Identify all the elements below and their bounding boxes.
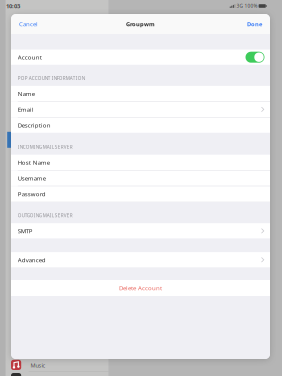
button[interactable]: SMTP — [11, 223, 270, 239]
button[interactable]: Host Name — [11, 155, 270, 170]
staticText: POP ACCOUNT INFORMATION — [18, 75, 85, 81]
button[interactable]: Email — [11, 102, 270, 117]
button[interactable]: Username — [11, 170, 270, 186]
staticText: 10:03 — [6, 2, 20, 10]
staticText: 3G — [237, 3, 243, 9]
staticText: Cancel — [19, 20, 38, 28]
staticText: Description — [18, 121, 51, 129]
staticText: Delete Account — [119, 284, 162, 292]
staticText: Done — [247, 20, 262, 28]
button[interactable]: Cancel — [11, 14, 38, 34]
staticText: Music — [30, 361, 45, 369]
staticText: INCOMING MAIL SERVER — [18, 144, 73, 150]
staticText: 100% — [245, 3, 258, 9]
staticText: Groupwm — [126, 20, 155, 28]
staticText: Email — [18, 105, 34, 113]
staticText: Account — [18, 53, 42, 61]
button[interactable]: Description — [11, 117, 270, 133]
staticText: Name — [18, 89, 35, 98]
staticText: OUTGOING MAIL SERVER — [18, 212, 73, 219]
button[interactable]: Done — [247, 14, 270, 34]
staticText: SMTP — [18, 227, 33, 235]
button[interactable]: Name — [11, 86, 270, 101]
button[interactable]: Account — [245, 52, 264, 63]
staticText: Host Name — [18, 158, 50, 166]
button[interactable]: Password — [11, 186, 270, 202]
staticText: Password — [18, 190, 46, 198]
button[interactable]: Advanced — [11, 252, 270, 267]
button[interactable]: Delete Account — [11, 280, 270, 296]
staticText: Advanced — [18, 256, 46, 264]
staticText: Username — [18, 174, 46, 182]
